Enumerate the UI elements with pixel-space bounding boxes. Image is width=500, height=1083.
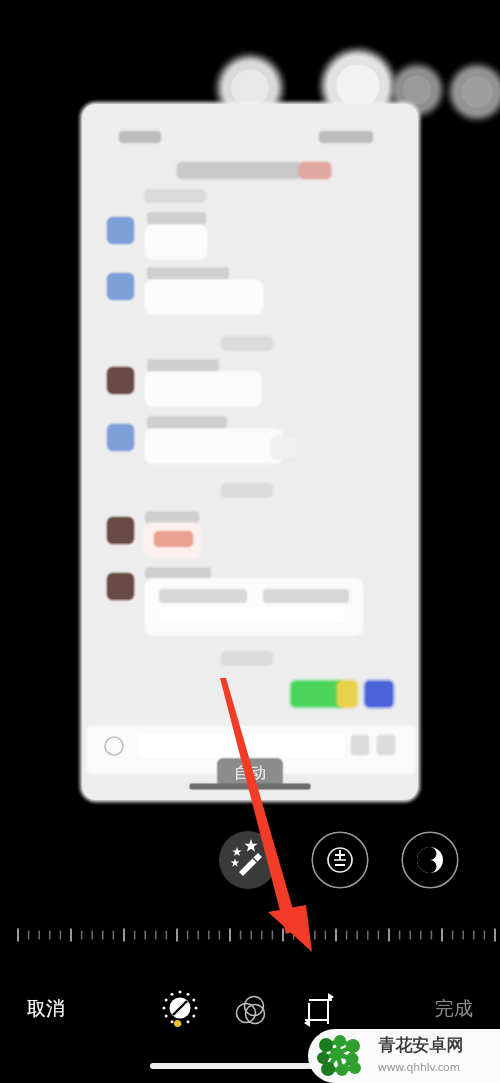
button[interactable]: 调节 — [155, 985, 205, 1035]
staticText: www.qhhlv.com — [378, 1059, 460, 1074]
staticText: 自动 — [234, 763, 266, 783]
button[interactable]: 取消 — [8, 986, 84, 1032]
button[interactable]: 曝光 — [311, 831, 369, 889]
staticText: 青花安卓网 — [378, 1035, 463, 1056]
button[interactable]: 自动增强 — [219, 831, 277, 889]
staticText: 取消 — [27, 997, 65, 1021]
button[interactable]: 对比度 — [401, 831, 459, 889]
staticText: 完成 — [435, 997, 473, 1021]
button[interactable]: 完成 — [416, 986, 492, 1032]
button[interactable]: 滤镜 — [225, 985, 275, 1035]
button[interactable]: 裁剪 — [294, 985, 344, 1035]
